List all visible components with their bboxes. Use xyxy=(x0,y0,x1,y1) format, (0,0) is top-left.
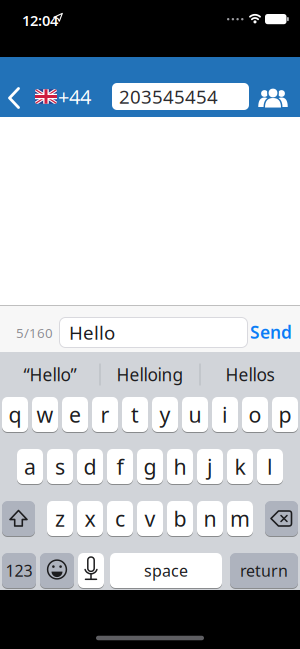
staticText: x xyxy=(84,504,95,533)
button[interactable]: Back xyxy=(8,86,20,107)
staticText: m xyxy=(230,504,250,533)
button[interactable]: Emoji xyxy=(40,553,74,588)
staticText: “Hello” xyxy=(23,363,76,386)
staticText: space xyxy=(144,560,188,581)
button[interactable]: Helloing xyxy=(100,352,200,397)
button[interactable]: l xyxy=(257,449,283,484)
staticText: q xyxy=(8,400,21,429)
button[interactable]: g xyxy=(137,449,163,484)
button[interactable]: v xyxy=(137,501,163,536)
button[interactable]: w xyxy=(32,397,58,432)
staticText: y xyxy=(159,400,170,429)
button[interactable]: c xyxy=(107,501,133,536)
button[interactable]: k xyxy=(227,449,253,484)
staticText: g xyxy=(143,452,156,481)
button[interactable]: return xyxy=(230,553,298,588)
button[interactable]: z xyxy=(47,501,73,536)
staticText: n xyxy=(203,504,216,533)
staticText: d xyxy=(83,452,96,481)
staticText: r xyxy=(100,400,109,429)
staticText: b xyxy=(173,504,186,533)
button[interactable]: p xyxy=(272,397,298,432)
button[interactable]: b xyxy=(167,501,193,536)
button[interactable]: m xyxy=(227,501,253,536)
staticText: j xyxy=(207,452,213,481)
staticText: o xyxy=(248,400,261,429)
button[interactable]: r xyxy=(92,397,118,432)
staticText: l xyxy=(267,452,273,481)
button[interactable]: 123 xyxy=(2,553,36,588)
button[interactable]: d xyxy=(77,449,103,484)
button[interactable]: a xyxy=(17,449,43,484)
staticText: +44 xyxy=(58,83,91,110)
staticText: k xyxy=(234,452,245,481)
staticText: p xyxy=(278,400,291,429)
staticText: 5/160 xyxy=(16,324,53,342)
button[interactable]: Contacts xyxy=(249,85,300,107)
button[interactable]: “Hello” xyxy=(0,352,100,397)
button[interactable]: s xyxy=(47,449,73,484)
staticText: w xyxy=(36,400,53,429)
staticText: u xyxy=(188,400,201,429)
button[interactable]: Delete xyxy=(265,501,298,536)
button[interactable]: q xyxy=(2,397,28,432)
button[interactable]: Dictate xyxy=(78,553,104,588)
staticText: c xyxy=(115,504,125,533)
button[interactable]: j xyxy=(197,449,223,484)
button[interactable]: e xyxy=(62,397,88,432)
button[interactable]: n xyxy=(197,501,223,536)
staticText: v xyxy=(144,504,155,533)
button[interactable]: y xyxy=(152,397,178,432)
button[interactable]: Shift xyxy=(2,501,35,536)
staticText: 123 xyxy=(5,560,32,581)
staticText: h xyxy=(173,452,186,481)
staticText: a xyxy=(24,452,36,481)
staticText: Helloing xyxy=(116,363,183,386)
button[interactable]: space xyxy=(110,553,222,588)
staticText: i xyxy=(222,400,228,429)
button[interactable]: t xyxy=(122,397,148,432)
staticText: 203545454 xyxy=(119,84,218,109)
button[interactable]: f xyxy=(107,449,133,484)
staticText: z xyxy=(55,504,65,533)
staticText: f xyxy=(116,452,123,481)
button[interactable]: Country code xyxy=(35,83,91,110)
staticText: s xyxy=(55,452,65,481)
button[interactable]: x xyxy=(77,501,103,536)
button[interactable]: Hellos xyxy=(200,352,300,397)
button[interactable]: h xyxy=(167,449,193,484)
staticText: 12:04 xyxy=(22,10,58,30)
staticText: Hellos xyxy=(225,363,274,386)
staticText: Hello xyxy=(69,320,115,345)
staticText: e xyxy=(69,400,81,429)
button[interactable]: i xyxy=(212,397,238,432)
button[interactable]: u xyxy=(182,397,208,432)
staticText: Send xyxy=(250,320,292,343)
button[interactable]: Send xyxy=(250,320,292,343)
staticText: t xyxy=(131,400,139,429)
staticText: return xyxy=(240,560,288,581)
button[interactable]: o xyxy=(242,397,268,432)
